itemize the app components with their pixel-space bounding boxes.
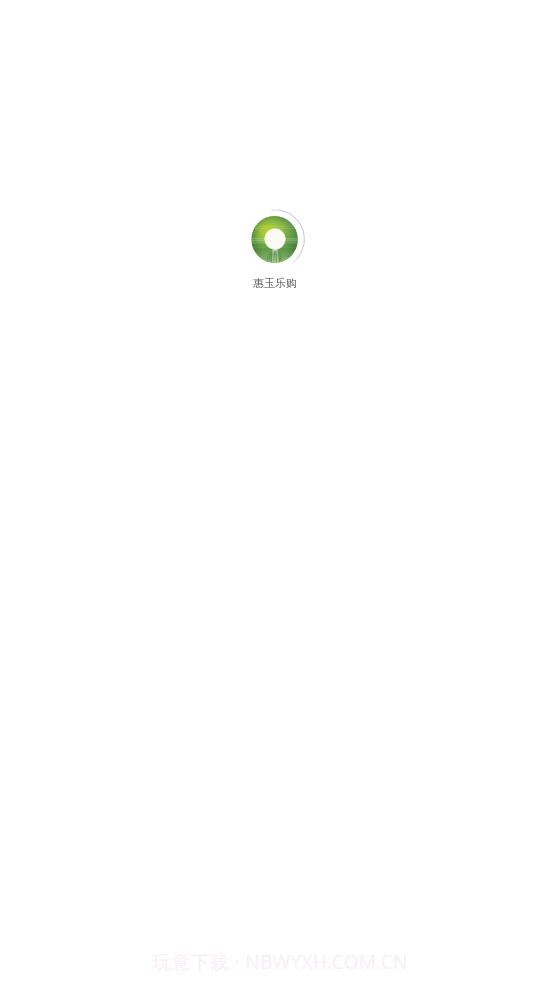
staticText: 玩意下载 · NBWYXH.COM.CN [5,949,550,975]
button[interactable]: 惠玉乐购 [215,276,335,290]
button[interactable]: 惠玉乐购 logo [246,213,312,279]
staticText: 惠玉乐购 [215,276,335,290]
